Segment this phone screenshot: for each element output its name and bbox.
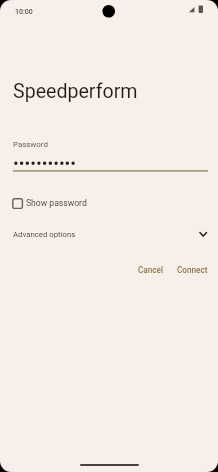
staticText: Connect (177, 265, 208, 275)
staticText: ••••••••••• (13, 153, 77, 173)
staticText: Cancel (138, 265, 164, 275)
staticText: Advanced options (13, 230, 76, 239)
staticText: 10:00 (15, 8, 33, 16)
button[interactable]: Show password (9, 194, 91, 212)
staticText: Speedperform (13, 80, 138, 103)
button[interactable]: Cancel (132, 260, 170, 280)
button[interactable]: Connect (171, 260, 213, 280)
button[interactable]: Advanced options (0, 226, 218, 244)
staticText: Password (13, 140, 48, 149)
staticText: Show password (26, 198, 87, 208)
